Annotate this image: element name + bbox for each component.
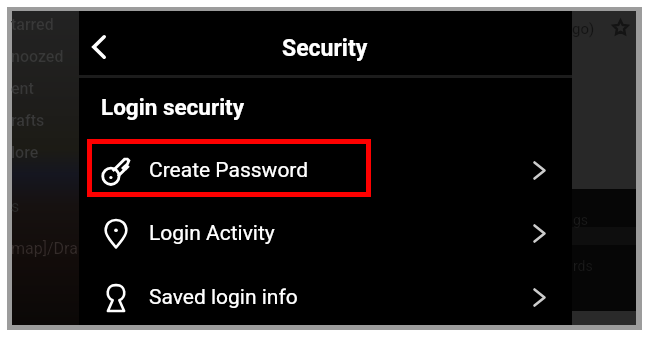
button[interactable]: Create Password [79, 139, 572, 202]
button[interactable]: Login Activity [79, 202, 572, 265]
staticText: gs [573, 212, 589, 228]
staticText: noozed [11, 47, 64, 66]
staticText: Login Activity [149, 221, 275, 246]
staticText: go) [572, 20, 595, 38]
staticText: rafts [11, 111, 45, 130]
staticText: lore [11, 143, 39, 162]
staticText: Security [282, 35, 368, 62]
staticText: s [11, 197, 20, 216]
staticText: rds [573, 258, 593, 274]
staticText: Saved login info [149, 285, 298, 310]
staticText: Login security [101, 94, 245, 120]
staticText: map]/Draf [11, 239, 78, 258]
staticText: Create Password [149, 158, 309, 183]
button[interactable]: Saved login info [79, 266, 572, 329]
staticText: tarred [11, 15, 54, 34]
button[interactable]: Back [83, 23, 131, 71]
staticText: ent [11, 79, 34, 98]
